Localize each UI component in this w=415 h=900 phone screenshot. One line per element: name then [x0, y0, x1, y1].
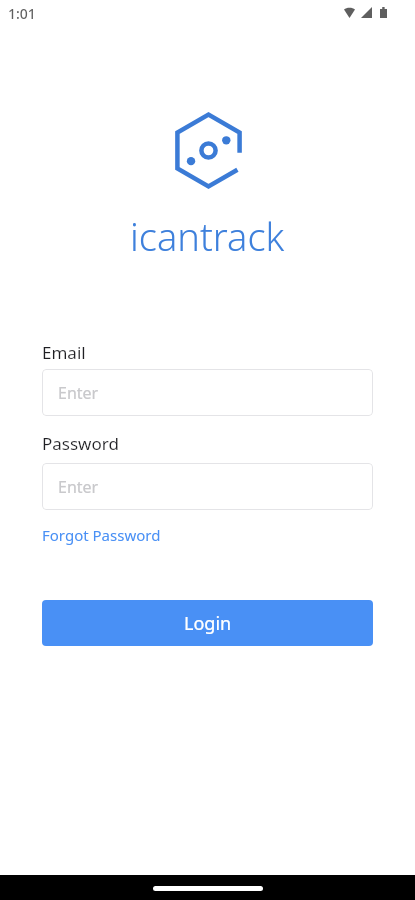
staticText: 1:01 — [8, 4, 36, 23]
button[interactable]: Enter — [42, 463, 373, 510]
button[interactable]: Login — [42, 600, 373, 646]
staticText: Forgot Password — [42, 525, 161, 545]
staticText: Password — [42, 432, 119, 455]
button[interactable]: Enter — [42, 369, 373, 416]
other: Wi-Fi — [344, 7, 355, 18]
staticText: Login — [184, 611, 232, 636]
staticText: Enter — [58, 382, 99, 404]
button[interactable]: Forgot Password — [42, 525, 161, 545]
staticText: Email — [42, 341, 86, 364]
staticText: icantrack — [130, 210, 285, 262]
other: Mobile signal — [361, 7, 372, 18]
other: icantrack logo — [174, 112, 243, 189]
other: Battery — [380, 7, 387, 18]
staticText: Enter — [58, 476, 99, 498]
